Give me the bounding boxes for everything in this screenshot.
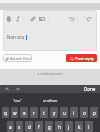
button[interactable]: q — [2, 107, 9, 118]
staticText: Post reply — [75, 56, 94, 61]
button[interactable]: e — [20, 107, 28, 118]
button[interactable]: f — [35, 121, 43, 132]
button[interactable]: Next field — [14, 85, 22, 93]
button[interactable]: o — [80, 107, 88, 118]
button[interactable]: p — [90, 107, 98, 118]
staticText: r — [33, 110, 35, 116]
staticText: oruthan — [43, 98, 58, 103]
button[interactable]: oruthan — [34, 98, 67, 103]
staticText: y — [53, 110, 56, 116]
button[interactable]: Previous field — [3, 85, 11, 93]
staticText: o — [83, 110, 86, 116]
button[interactable]: Done — [84, 86, 96, 92]
staticText: i — [73, 110, 75, 116]
staticText: q — [4, 110, 7, 116]
button[interactable]: Post reply — [66, 54, 97, 62]
staticText: j — [68, 124, 70, 130]
button[interactable]: Image — [37, 10, 46, 27]
staticText: e — [23, 110, 26, 116]
button[interactable]: Undo — [67, 10, 76, 27]
staticText: s — [18, 124, 21, 130]
staticText: "ora" — [13, 98, 22, 103]
staticText: g — [48, 124, 51, 130]
button[interactable]: h — [55, 121, 63, 132]
staticText: s.chaloesa.com — [37, 71, 63, 76]
staticText: Done — [84, 86, 96, 92]
button[interactable]: k — [75, 121, 83, 132]
button[interactable]: Attach files — [3, 54, 32, 62]
staticText: d — [28, 124, 31, 130]
button[interactable]: l — [85, 121, 93, 132]
button[interactable]: w — [11, 107, 18, 118]
button[interactable]: Redo — [84, 10, 93, 27]
staticText: a — [9, 124, 12, 130]
staticText: h — [58, 124, 61, 130]
button[interactable]: Italic — [13, 10, 22, 27]
staticText: f — [38, 124, 40, 130]
button[interactable]: r — [30, 107, 38, 118]
button[interactable]: t — [40, 107, 48, 118]
button[interactable]: s — [16, 121, 23, 132]
button[interactable]: j — [65, 121, 73, 132]
staticText: k — [78, 124, 81, 130]
button[interactable]: a — [7, 121, 14, 132]
staticText: Nan oru — [7, 34, 25, 40]
staticText: u — [63, 110, 66, 116]
button[interactable]: Link — [28, 10, 37, 27]
button[interactable]: i — [70, 107, 78, 118]
button[interactable]: "ora" — [0, 98, 34, 103]
button[interactable]: Bold — [4, 10, 13, 27]
staticText: w — [13, 110, 17, 116]
staticText: t — [43, 110, 45, 116]
button[interactable]: d — [25, 121, 33, 132]
staticText: p — [93, 110, 96, 116]
button[interactable]: y — [50, 107, 58, 118]
button[interactable]: g — [45, 121, 53, 132]
button[interactable]: u — [60, 107, 68, 118]
staticText: l — [88, 124, 90, 130]
staticText: Attach files — [10, 56, 31, 61]
